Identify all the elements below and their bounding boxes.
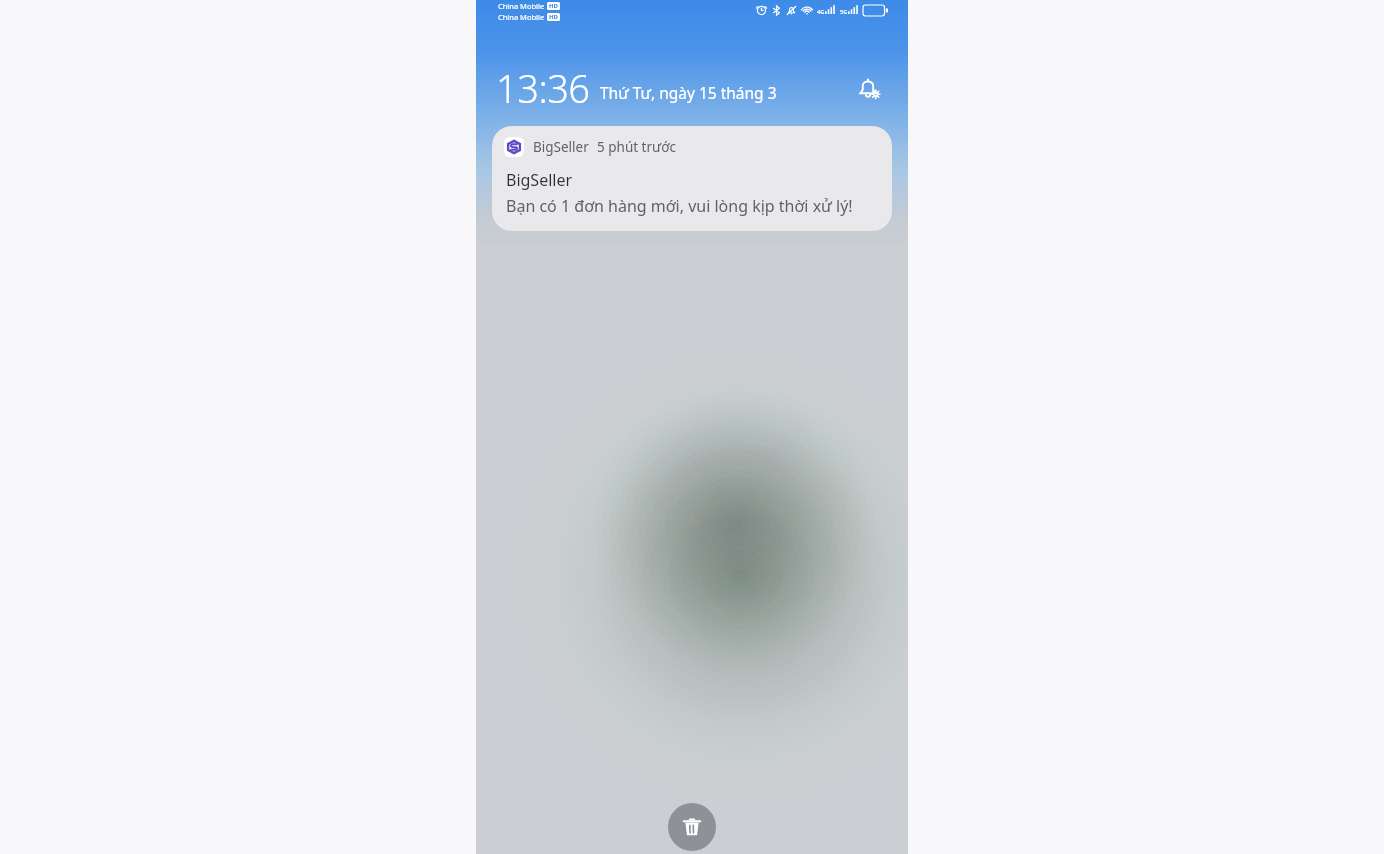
- staticText: 4G: [817, 8, 825, 15]
- staticText: HD: [549, 2, 558, 10]
- staticText: 5 phút trước: [597, 138, 676, 156]
- button[interactable]: BigSeller: [492, 126, 892, 231]
- button[interactable]: Clear all notifications: [668, 803, 716, 851]
- button[interactable]: Notification settings: [848, 67, 890, 109]
- staticText: BigSeller: [533, 138, 589, 156]
- staticText: 13:36: [496, 62, 590, 114]
- staticText: BigSeller: [506, 169, 573, 191]
- staticText: Bạn có 1 đơn hàng mới, vui lòng kịp thời…: [506, 195, 853, 217]
- staticText: 5G: [840, 8, 848, 15]
- staticText: HD: [549, 13, 558, 21]
- staticText: China Mobile: [498, 1, 545, 11]
- staticText: Thứ Tư, ngày 15 tháng 3: [600, 82, 777, 103]
- staticText: China Mobile: [498, 12, 545, 22]
